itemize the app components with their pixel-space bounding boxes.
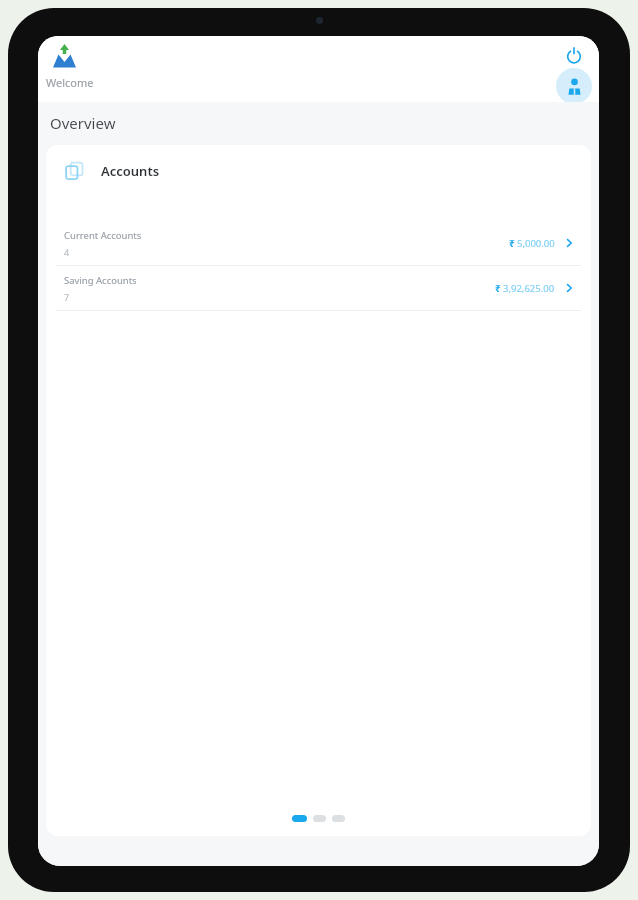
button[interactable]: Bank logo <box>46 38 82 74</box>
button[interactable]: Logout <box>559 40 589 70</box>
staticText: Accounts <box>101 162 160 180</box>
staticText: Saving Accounts <box>64 274 137 287</box>
button[interactable]: Current Accounts <box>46 221 591 265</box>
button[interactable]: Saving Accounts <box>46 266 591 310</box>
button[interactable]: Page indicator <box>313 815 326 822</box>
staticText: 7 <box>64 291 70 303</box>
staticText: ₹ <box>495 281 501 295</box>
button[interactable]: Page indicator <box>332 815 345 822</box>
staticText: Overview <box>50 113 116 133</box>
staticText: ₹ <box>509 236 515 250</box>
button[interactable]: Accounts <box>46 145 591 197</box>
button[interactable]: Profile <box>556 68 592 104</box>
button[interactable]: Page indicator <box>292 815 307 822</box>
staticText: 3,92,625.00 <box>503 282 555 295</box>
staticText: 4 <box>64 246 70 258</box>
staticText: 5,000.00 <box>517 237 555 250</box>
staticText: Current Accounts <box>64 229 142 242</box>
staticText: Welcome <box>46 75 94 90</box>
